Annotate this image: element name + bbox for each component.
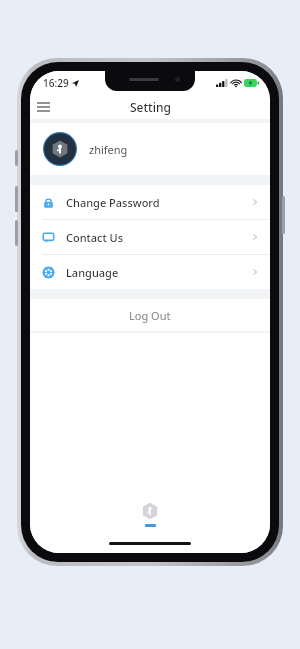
staticText: Log Out [129,308,171,323]
staticText: Change Password [66,195,252,210]
button[interactable]: Log Out [30,299,270,331]
button[interactable]: Menu [30,94,56,119]
staticText: Language [66,265,252,280]
staticText: 16:29 [43,76,69,90]
staticText: zhifeng [89,142,128,157]
staticText: Setting [130,99,171,115]
staticText: Contact Us [66,230,252,245]
button[interactable]: zhifeng [30,123,270,175]
button[interactable]: Language [30,255,270,289]
button[interactable]: Contact Us [30,220,270,254]
button[interactable]: Change Password [30,185,270,219]
